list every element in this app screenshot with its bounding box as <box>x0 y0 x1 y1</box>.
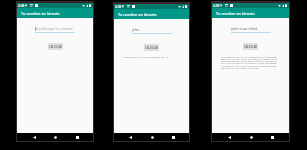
staticText: CALCULAR <box>244 45 257 49</box>
staticText: CALCULAR <box>145 46 158 50</box>
staticText: john oscar trinid <box>231 26 258 31</box>
button[interactable]: john oscar trinid <box>231 26 271 33</box>
button[interactable]: Home <box>50 133 60 141</box>
button[interactable]: Recent apps <box>267 133 277 141</box>
button[interactable]: Escribe aquí tu nombre <box>35 26 75 33</box>
button[interactable]: john <box>132 27 172 34</box>
button[interactable]: CALCULAR <box>243 43 258 50</box>
staticText: 101110 01101001 01110100 01111001 001000… <box>221 61 277 64</box>
button[interactable]: Recent apps <box>168 133 178 141</box>
staticText: 4:38 <box>18 4 25 8</box>
staticText: 0010 00100000 01110100 01110010 01101001… <box>221 59 278 62</box>
staticText: 00 01101111 01110011 01100011 01100001 0… <box>221 57 278 60</box>
staticText: 01101010 01101111 01101000 01101110 <box>123 55 181 58</box>
button[interactable]: Recent apps <box>72 133 82 141</box>
button[interactable]: Back <box>224 133 234 141</box>
staticText: Escribe aquí tu nombre <box>36 26 73 31</box>
staticText: 4:38 <box>213 4 220 8</box>
staticText: 01101010 01101111 01101000 01101110 0010… <box>221 55 277 58</box>
staticText: 00 01101011 01100101 01111001 <box>221 66 260 69</box>
button[interactable]: CALCULAR <box>144 44 159 51</box>
staticText: Tu nombre en binario <box>118 12 157 17</box>
staticText: Tu nombre en binario <box>21 11 60 16</box>
staticText: 4:38 <box>115 5 122 9</box>
staticText: john <box>132 27 140 32</box>
button[interactable]: Home <box>246 133 256 141</box>
button[interactable]: Home <box>147 133 157 141</box>
staticText: CALCULAR <box>49 45 62 49</box>
button[interactable]: Back <box>125 133 135 141</box>
button[interactable]: Back <box>29 133 39 141</box>
staticText: Tu nombre en binario <box>216 11 255 16</box>
staticText: 01100011 01101111 01101001 01101100 0010… <box>221 64 277 67</box>
button[interactable]: CALCULAR <box>48 43 63 50</box>
